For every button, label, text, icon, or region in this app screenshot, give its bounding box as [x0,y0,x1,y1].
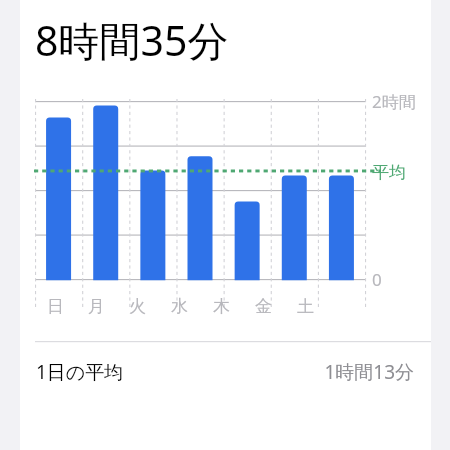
staticText: 土 [297,296,314,317]
staticText: 0 [372,268,382,291]
staticText: 8時間35分 [35,12,229,68]
staticText: 2時間 [372,90,416,113]
staticText: 月 [88,296,105,317]
staticText: 1日の平均 [36,359,124,385]
button[interactable]: 1日の平均 [20,342,431,402]
staticText: 火 [129,296,146,317]
staticText: 日 [47,296,64,317]
staticText: 金 [255,296,272,317]
staticText: 平均 [372,162,406,183]
staticText: 水 [171,296,188,317]
staticText: 木 [213,296,230,317]
staticText: 1時間13分 [324,359,414,385]
